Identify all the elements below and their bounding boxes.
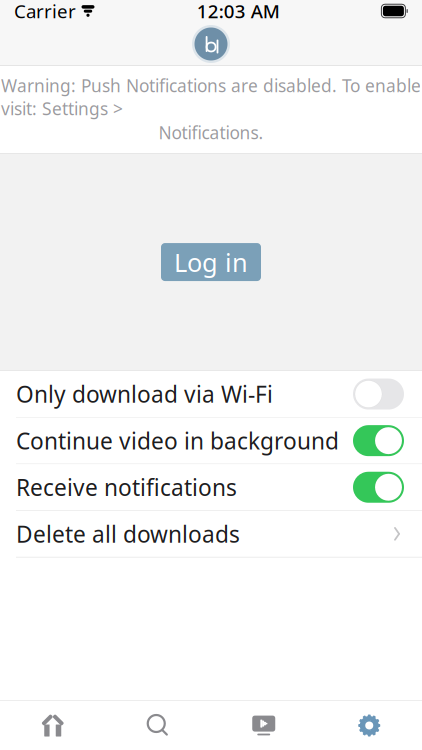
staticText: Carrier <box>14 0 76 23</box>
staticText: Only download via Wi-Fi <box>16 379 273 409</box>
staticText: Notifications. <box>158 121 263 144</box>
button[interactable]: Home <box>0 701 105 750</box>
button[interactable]: Search <box>105 701 211 750</box>
staticText: 12:03 AM <box>197 0 280 23</box>
button[interactable]: Videos <box>211 701 316 750</box>
staticText: Receive notifications <box>16 472 237 502</box>
button[interactable]: Delete all downloads <box>0 511 422 557</box>
button[interactable]: Log in <box>161 243 261 281</box>
button[interactable]: Settings <box>316 701 422 750</box>
staticText: Warning: Push Notifications are disabled… <box>1 74 421 120</box>
button[interactable]: Receive notifications <box>0 464 422 510</box>
staticText: Continue video in background <box>16 426 339 456</box>
staticText: Log in <box>174 245 248 279</box>
staticText: Delete all downloads <box>16 519 240 549</box>
button[interactable]: Continue video in background <box>0 418 422 464</box>
button[interactable]: Only download via Wi-Fi <box>0 371 422 417</box>
